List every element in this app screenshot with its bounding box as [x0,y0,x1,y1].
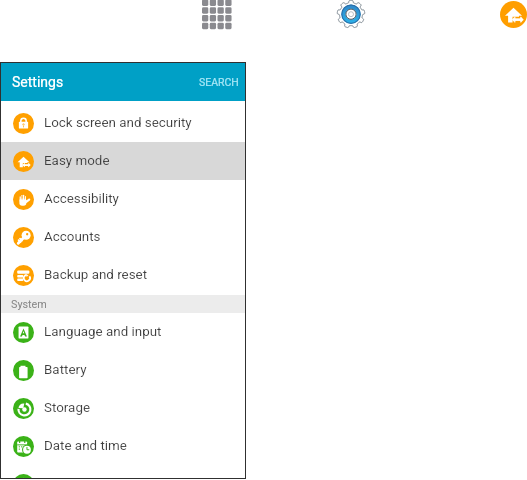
staticText: Battery [44,362,87,378]
button[interactable]: Battery [1,351,245,389]
staticText: Accessibility [44,191,119,207]
button[interactable]: Date and time [1,427,245,465]
button[interactable]: Settings [337,0,366,29]
button[interactable]: Software update [1,465,245,478]
staticText: System [11,298,47,311]
staticText: Easy mode [44,153,110,169]
button[interactable]: Easy mode [1,142,245,180]
staticText: Backup and reset [44,267,148,283]
button[interactable]: Apps [202,0,231,30]
button[interactable]: Accounts [1,218,245,256]
staticText: Language and input [44,324,162,340]
button[interactable]: Backup and reset [1,256,245,294]
button[interactable]: Easy mode [500,1,527,28]
staticText: Storage [44,400,91,416]
button[interactable]: Storage [1,389,245,427]
button[interactable]: Language and input [1,313,245,351]
staticText: Accounts [44,229,101,245]
staticText: Lock screen and security [44,115,192,131]
staticText: SEARCH [199,76,239,88]
staticText: Settings [12,74,64,90]
staticText: Date and time [44,438,127,454]
button[interactable]: Accessibility [1,180,245,218]
button[interactable]: SEARCH [193,70,245,94]
button[interactable]: Lock screen and security [1,104,245,142]
